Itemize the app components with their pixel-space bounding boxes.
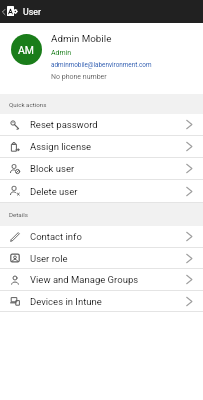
staticText: Block user bbox=[30, 163, 75, 174]
staticText: Reset password bbox=[30, 119, 98, 130]
staticText: No phone number bbox=[51, 73, 107, 81]
button[interactable]: Delete user bbox=[0, 180, 203, 203]
staticText: View and Manage Groups bbox=[30, 274, 139, 285]
staticText: AM bbox=[18, 44, 35, 56]
staticText: Devices in Intune bbox=[30, 296, 102, 307]
staticText: A bbox=[8, 7, 13, 16]
staticText: adminmobile@labenvironment.com bbox=[51, 61, 152, 68]
button[interactable]: Contact info bbox=[0, 226, 203, 248]
button[interactable]: User role bbox=[0, 248, 203, 269]
button[interactable]: Block user bbox=[0, 158, 203, 180]
staticText: User role bbox=[30, 253, 68, 264]
staticText: User bbox=[23, 7, 41, 17]
staticText: Admin Mobile bbox=[51, 33, 112, 44]
button[interactable]: Reset password bbox=[0, 114, 203, 136]
button[interactable]: View and Manage Groups bbox=[0, 269, 203, 291]
staticText: Contact info bbox=[30, 231, 82, 242]
button[interactable]: Back bbox=[0, 5, 10, 18]
staticText: Details bbox=[9, 211, 28, 218]
staticText: Delete user bbox=[30, 186, 78, 197]
button[interactable]: Assign license bbox=[0, 136, 203, 158]
button[interactable]: Devices in Intune bbox=[0, 291, 203, 312]
staticText: Admin bbox=[51, 49, 72, 57]
staticText: Quick actions bbox=[9, 101, 47, 108]
staticText: Assign license bbox=[30, 141, 92, 152]
